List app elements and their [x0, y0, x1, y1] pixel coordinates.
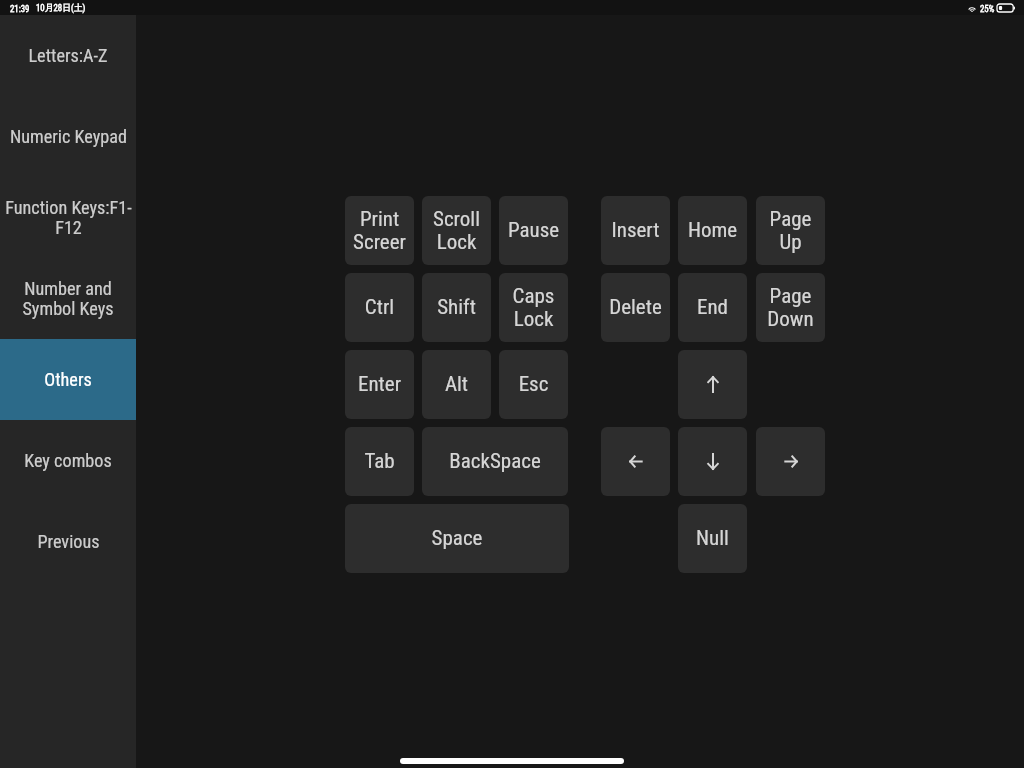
button[interactable]: Caps Lock — [499, 273, 568, 342]
staticText: End — [680, 295, 745, 320]
button[interactable]: Scroll Lock — [422, 196, 491, 265]
staticText: Home — [680, 218, 745, 243]
button[interactable]: BackSpace — [422, 427, 568, 496]
button[interactable]: Number and Symbol Keys — [0, 258, 136, 339]
button[interactable]: End — [678, 273, 747, 342]
button[interactable]: Enter — [345, 350, 414, 419]
staticText: Alt — [424, 372, 489, 397]
button[interactable]: Function Keys:F1- F12 — [0, 177, 136, 258]
staticText: Ctrl — [347, 295, 412, 320]
staticText: Others — [44, 369, 92, 390]
button[interactable]: Insert — [601, 196, 670, 265]
button[interactable]: Arrow down — [678, 427, 747, 496]
button[interactable]: Arrow up — [678, 350, 747, 419]
button[interactable]: Previous — [0, 501, 136, 582]
button[interactable]: Null — [678, 504, 747, 573]
staticText: Esc — [501, 372, 566, 397]
button[interactable]: Letters:A-Z — [0, 15, 136, 96]
button[interactable]: Page Down — [756, 273, 825, 342]
other: Battery 25 percent — [997, 4, 1015, 12]
staticText: 25% — [980, 4, 995, 14]
button[interactable]: Home — [678, 196, 747, 265]
button[interactable]: Delete — [601, 273, 670, 342]
staticText: Null — [680, 526, 745, 551]
staticText: 10月28日(土) — [36, 3, 86, 14]
staticText: Pause — [501, 218, 566, 243]
staticText: Letters:A-Z — [28, 45, 108, 66]
button[interactable]: Print Screer — [345, 196, 414, 265]
button[interactable]: Numeric Keypad — [0, 96, 136, 177]
other: Wi-Fi — [967, 3, 977, 12]
button[interactable]: Key combos — [0, 420, 136, 501]
staticText: Key combos — [24, 450, 112, 471]
staticText: Scroll Lock — [424, 207, 489, 254]
staticText: Previous — [37, 531, 100, 552]
button[interactable]: Arrow right — [756, 427, 825, 496]
staticText: Enter — [347, 372, 412, 397]
staticText: Delete — [603, 295, 668, 320]
button[interactable]: Arrow left — [601, 427, 670, 496]
staticText: Insert — [603, 218, 668, 243]
staticText: Function Keys:F1- F12 — [5, 197, 132, 238]
button[interactable]: Tab — [345, 427, 414, 496]
button[interactable]: Space — [345, 504, 569, 573]
staticText: Tab — [347, 449, 412, 474]
button[interactable]: Pause — [499, 196, 568, 265]
staticText: Page Down — [758, 284, 823, 331]
staticText: Page Up — [758, 207, 823, 254]
staticText: BackSpace — [424, 449, 566, 474]
button[interactable]: Shift — [422, 273, 491, 342]
staticText: Print Screer — [347, 207, 412, 254]
button[interactable]: Page Up — [756, 196, 825, 265]
button[interactable]: Others — [0, 339, 136, 420]
button[interactable]: Esc — [499, 350, 568, 419]
staticText: Space — [347, 526, 567, 551]
staticText: Caps Lock — [501, 284, 566, 331]
staticText: Number and Symbol Keys — [22, 278, 114, 319]
button[interactable]: Alt — [422, 350, 491, 419]
staticText: Shift — [424, 295, 489, 320]
button[interactable]: Ctrl — [345, 273, 414, 342]
staticText: Numeric Keypad — [10, 126, 127, 147]
staticText: 21:39 — [10, 4, 30, 14]
